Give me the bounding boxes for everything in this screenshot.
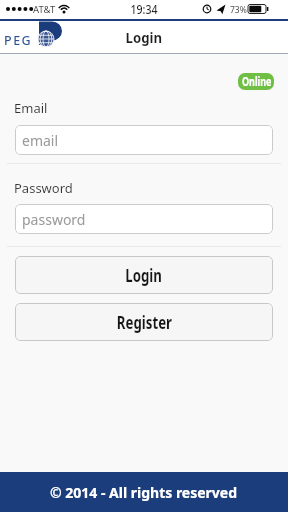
staticText: Email xyxy=(14,99,48,117)
staticText: email xyxy=(22,131,59,150)
staticText: PEG xyxy=(4,32,33,49)
staticText: Login xyxy=(125,27,162,47)
staticText: password xyxy=(22,210,86,229)
staticText: 73% xyxy=(230,3,247,16)
button[interactable]: Register xyxy=(15,303,273,341)
button[interactable]: © 2014 - All rights reserved xyxy=(0,472,288,512)
staticText: AT&T xyxy=(33,3,56,16)
staticText: © 2014 - All rights reserved xyxy=(50,483,238,502)
button[interactable]: password xyxy=(15,204,273,234)
button[interactable]: email xyxy=(15,125,273,155)
button[interactable]: Online xyxy=(238,73,274,90)
button[interactable]: Login xyxy=(15,256,273,294)
staticText: Password xyxy=(14,179,73,197)
staticText: Online xyxy=(242,74,270,90)
button[interactable]: PEG xyxy=(0,21,70,53)
staticText: Register xyxy=(117,311,172,334)
staticText: 19:34 xyxy=(17,1,271,17)
staticText: Login xyxy=(125,264,163,287)
